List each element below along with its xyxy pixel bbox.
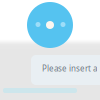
staticText: Please insert a	[42, 63, 97, 74]
